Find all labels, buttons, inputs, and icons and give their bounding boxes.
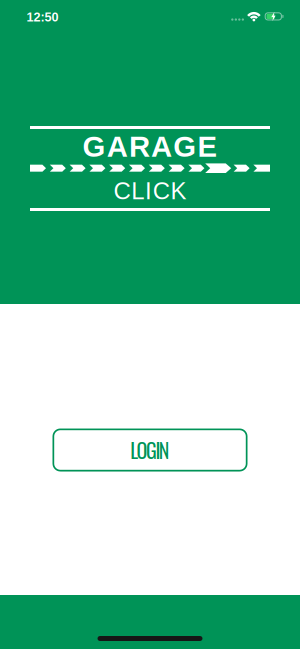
staticText: G xyxy=(173,130,196,163)
staticText: C xyxy=(114,178,131,204)
staticText: O xyxy=(137,435,148,465)
staticText: C xyxy=(153,178,170,204)
staticText: I xyxy=(145,178,152,204)
staticText: 12:50 xyxy=(26,10,58,24)
staticText: G xyxy=(82,130,105,163)
staticText: E xyxy=(197,130,217,163)
staticText: L xyxy=(130,435,138,465)
staticText: L xyxy=(131,178,144,204)
button[interactable]: L xyxy=(52,428,247,471)
staticText: G xyxy=(146,435,157,465)
staticText: N xyxy=(159,435,170,465)
staticText: R xyxy=(129,130,150,163)
staticText: K xyxy=(170,178,186,204)
staticText: I xyxy=(155,435,160,465)
staticText: A xyxy=(151,130,172,163)
staticText: A xyxy=(107,130,128,163)
